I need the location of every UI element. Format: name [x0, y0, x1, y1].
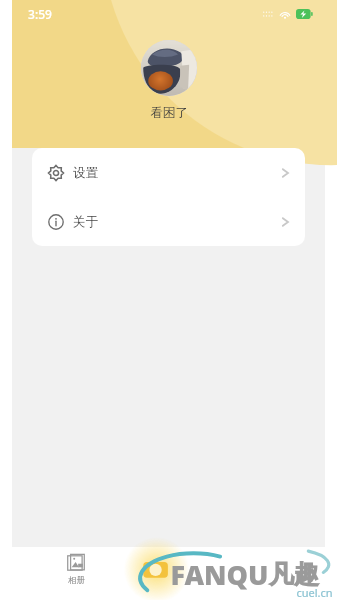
staticText: 3:59 — [28, 6, 52, 22]
button[interactable]: About — [32, 197, 305, 246]
button[interactable]: Avatar — [141, 40, 197, 96]
staticText: 凡趣 — [269, 559, 319, 590]
button[interactable]: Settings — [32, 148, 305, 197]
button[interactable]: 相册 — [52, 547, 100, 600]
staticText: FANQU — [170, 556, 269, 593]
staticText: 看困了 — [150, 105, 188, 121]
staticText: 设置 — [73, 165, 98, 181]
staticText: 关于 — [73, 214, 98, 230]
staticText: cuel.cn — [296, 585, 333, 600]
staticText: 相册 — [68, 575, 85, 586]
